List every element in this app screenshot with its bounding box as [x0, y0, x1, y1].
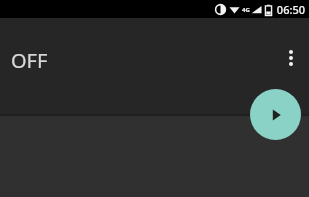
staticText: 4G [242, 6, 250, 14]
staticText: OFF [11, 47, 48, 74]
button[interactable]: More options [273, 40, 309, 76]
button[interactable]: Start [250, 89, 301, 140]
staticText: 06:50 [276, 2, 305, 17]
